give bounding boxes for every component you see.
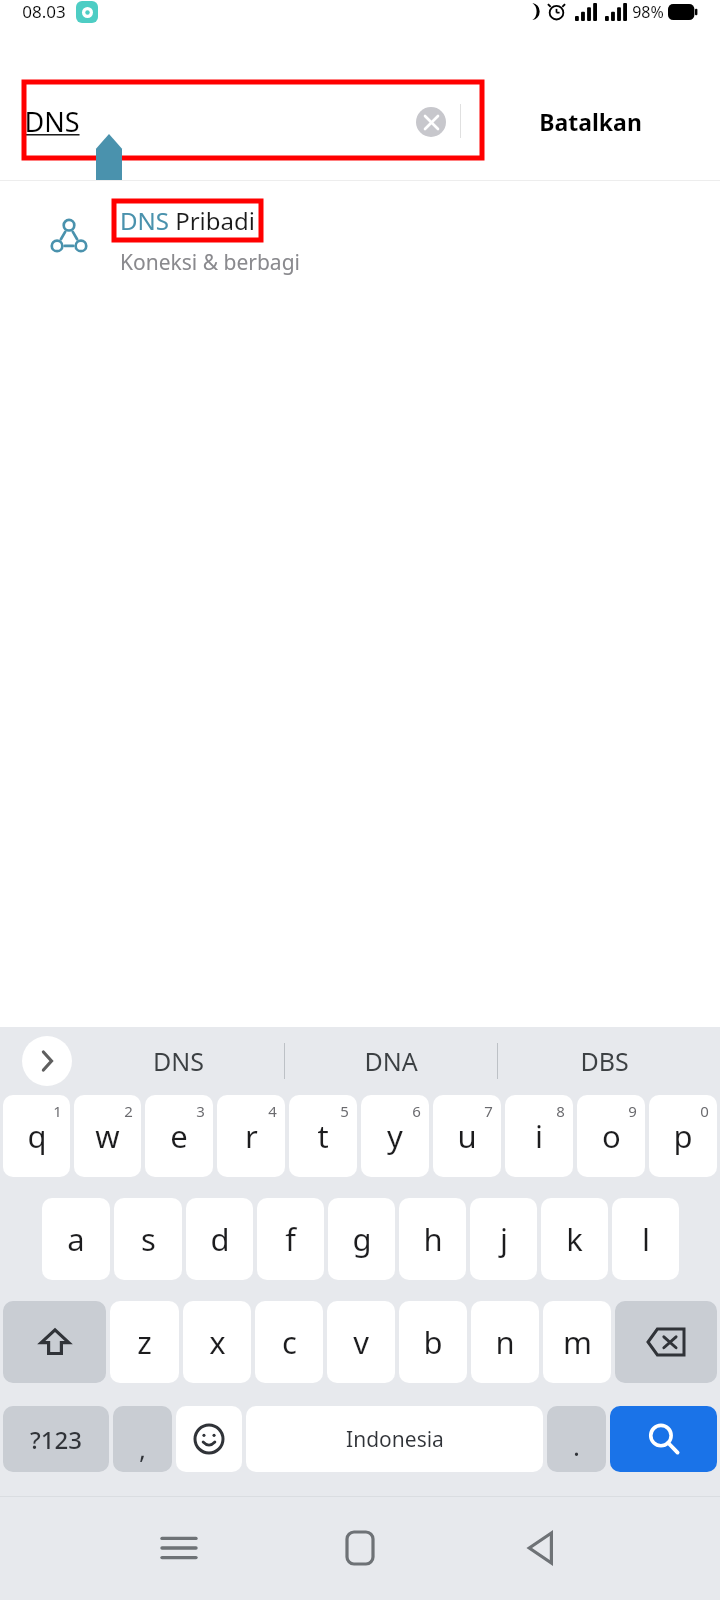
button[interactable]: DNS: [0, 62, 460, 180]
staticText: 3: [196, 1101, 205, 1121]
button[interactable]: a: [42, 1198, 110, 1280]
staticText: Koneksi & berbagi: [120, 248, 300, 277]
staticText: 08.03: [22, 0, 66, 23]
button[interactable]: h: [399, 1198, 466, 1280]
staticText: n: [495, 1321, 515, 1363]
button[interactable]: p: [649, 1095, 717, 1177]
staticText: 1: [53, 1101, 62, 1121]
staticText: z: [137, 1321, 152, 1363]
button[interactable]: f: [257, 1198, 324, 1280]
button[interactable]: Batalkan: [461, 62, 720, 180]
staticText: 98%: [632, 1, 664, 23]
staticText: k: [566, 1218, 583, 1260]
staticText: DNS: [153, 1044, 204, 1078]
staticText: a: [67, 1218, 85, 1260]
button[interactable]: k: [541, 1198, 608, 1280]
staticText: 9: [628, 1101, 637, 1121]
staticText: d: [210, 1218, 230, 1260]
staticText: c: [282, 1321, 297, 1363]
button[interactable]: u: [433, 1095, 501, 1177]
button[interactable]: n: [471, 1301, 539, 1383]
button[interactable]: DNS Pribadi: [0, 181, 720, 297]
staticText: t: [317, 1115, 329, 1157]
staticText: Indonesia: [346, 1425, 444, 1454]
button[interactable]: Search: [610, 1406, 717, 1472]
staticText: u: [457, 1115, 477, 1157]
staticText: DBS: [580, 1044, 629, 1078]
button[interactable]: v: [327, 1301, 395, 1383]
button[interactable]: t: [289, 1095, 357, 1177]
button[interactable]: Recent apps: [141, 1510, 217, 1586]
button[interactable]: Backspace: [615, 1301, 717, 1383]
button[interactable]: z: [110, 1301, 179, 1383]
staticText: 8: [556, 1101, 565, 1121]
button[interactable]: Home: [322, 1510, 398, 1586]
staticText: p: [673, 1115, 693, 1157]
staticText: w: [95, 1115, 120, 1157]
button[interactable]: Back: [503, 1510, 579, 1586]
button[interactable]: l: [612, 1198, 679, 1280]
staticText: h: [423, 1218, 443, 1260]
staticText: 5: [340, 1101, 349, 1121]
staticText: 0: [700, 1101, 709, 1121]
button[interactable]: j: [470, 1198, 537, 1280]
button[interactable]: c: [255, 1301, 323, 1383]
staticText: 6: [412, 1101, 421, 1121]
staticText: f: [285, 1218, 296, 1260]
staticText: 7: [484, 1101, 493, 1121]
staticText: l: [642, 1218, 650, 1260]
staticText: r: [245, 1115, 258, 1157]
button[interactable]: i: [505, 1095, 573, 1177]
staticText: DNA: [364, 1044, 418, 1078]
staticText: e: [170, 1115, 188, 1157]
staticText: y: [387, 1115, 403, 1157]
staticText: ,: [139, 1431, 146, 1466]
staticText: s: [141, 1218, 156, 1260]
button[interactable]: e: [145, 1095, 213, 1177]
button[interactable]: x: [183, 1301, 251, 1383]
button[interactable]: w: [74, 1095, 141, 1177]
button[interactable]: g: [328, 1198, 395, 1280]
button[interactable]: Shift: [3, 1301, 106, 1383]
button[interactable]: DNS: [72, 1027, 284, 1095]
staticText: .: [573, 1428, 580, 1463]
button[interactable]: Emoji: [176, 1406, 242, 1472]
button[interactable]: DNA: [285, 1027, 497, 1095]
button[interactable]: o: [577, 1095, 645, 1177]
button[interactable]: ?123: [3, 1406, 109, 1472]
staticText: j: [500, 1218, 508, 1260]
staticText: 2: [124, 1101, 133, 1121]
button[interactable]: r: [217, 1095, 285, 1177]
button[interactable]: b: [399, 1301, 467, 1383]
staticText: v: [353, 1321, 369, 1363]
staticText: q: [27, 1115, 47, 1157]
staticText: b: [423, 1321, 443, 1363]
button[interactable]: .: [547, 1406, 606, 1472]
button[interactable]: m: [543, 1301, 611, 1383]
button[interactable]: q: [3, 1095, 70, 1177]
button[interactable]: Clear text: [416, 107, 446, 137]
staticText: x: [209, 1321, 226, 1363]
staticText: ?123: [30, 1423, 82, 1456]
staticText: 4: [268, 1101, 277, 1121]
staticText: i: [535, 1115, 543, 1157]
button[interactable]: ,: [113, 1406, 172, 1472]
staticText: m: [563, 1321, 592, 1363]
button[interactable]: DBS: [498, 1027, 710, 1095]
button[interactable]: y: [361, 1095, 429, 1177]
button[interactable]: s: [114, 1198, 182, 1280]
staticText: DNS Pribadi: [120, 204, 255, 237]
staticText: DNS: [24, 103, 80, 140]
staticText: Batalkan: [539, 106, 642, 137]
button[interactable]: d: [186, 1198, 253, 1280]
button[interactable]: More suggestions: [22, 1036, 72, 1086]
staticText: g: [352, 1218, 372, 1260]
button[interactable]: Indonesia: [246, 1406, 543, 1472]
staticText: o: [602, 1115, 621, 1157]
